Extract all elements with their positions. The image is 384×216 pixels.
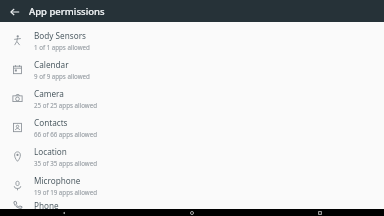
staticText: 66 of 66 apps allowed (34, 130, 97, 138)
button[interactable]: Contacts (0, 113, 384, 142)
button[interactable]: Back (0, 209, 128, 216)
button[interactable]: Microphone (0, 171, 384, 200)
button[interactable]: Body Sensors (0, 26, 384, 55)
staticText: Phone (34, 200, 59, 209)
button[interactable]: Phone (0, 200, 384, 209)
button[interactable]: Recents (256, 209, 384, 216)
button[interactable]: Location (0, 142, 384, 171)
staticText: 25 of 25 apps allowed (34, 101, 97, 109)
staticText: Body Sensors (34, 30, 86, 41)
staticText: Calendar (34, 59, 69, 70)
staticText: 35 of 35 apps allowed (34, 159, 97, 167)
button[interactable]: Calendar (0, 55, 384, 84)
button[interactable]: Back (6, 3, 23, 20)
staticText: Camera (34, 88, 64, 99)
staticText: Contacts (34, 117, 68, 128)
staticText: Microphone (34, 175, 81, 186)
staticText: Location (34, 146, 67, 157)
button[interactable]: Camera (0, 84, 384, 113)
staticText: 9 of 9 apps allowed (34, 72, 90, 80)
staticText: 1 of 1 apps allowed (34, 43, 90, 51)
staticText: 19 of 19 apps allowed (34, 188, 97, 196)
button[interactable]: Home (128, 209, 256, 216)
staticText: App permissions (29, 5, 105, 18)
